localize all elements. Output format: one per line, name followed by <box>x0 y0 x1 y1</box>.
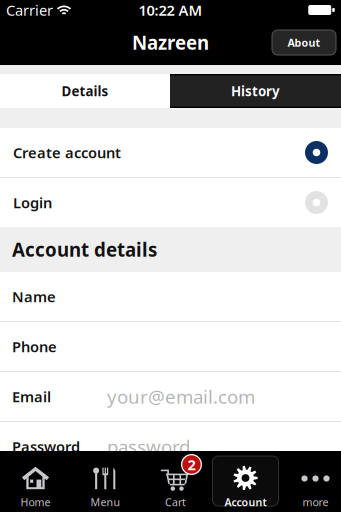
staticText: Account details <box>12 237 157 262</box>
staticText: About <box>287 35 320 50</box>
staticText: Carrier <box>6 0 53 20</box>
staticText: Home <box>20 495 50 509</box>
button[interactable]: Home <box>0 451 70 512</box>
staticText: Name <box>12 287 56 306</box>
staticText: more <box>302 495 328 509</box>
staticText: password <box>107 434 190 459</box>
staticText: Email <box>12 387 51 406</box>
staticText: Phone <box>12 337 57 356</box>
staticText: Nazreen <box>132 30 209 55</box>
staticText: Menu <box>90 495 120 509</box>
button[interactable]: Login <box>0 178 341 227</box>
button[interactable]: Details <box>0 74 170 108</box>
staticText: Login <box>13 193 52 212</box>
staticText: 10:22 AM <box>138 0 202 20</box>
staticText: Confirm <box>12 487 69 506</box>
button[interactable]: Account <box>210 451 280 512</box>
staticText: Account <box>224 495 266 509</box>
button[interactable]: more <box>280 451 341 512</box>
staticText: Password <box>12 437 80 456</box>
staticText: Cart <box>165 495 186 509</box>
button[interactable]: Create account <box>0 128 341 177</box>
button[interactable]: About <box>272 30 336 55</box>
staticText: Create account <box>13 143 121 162</box>
staticText: your@email.com <box>107 384 255 409</box>
button[interactable]: History <box>170 74 341 108</box>
button[interactable]: Menu <box>70 451 140 512</box>
button[interactable]: Cart <box>140 451 210 512</box>
staticText: History <box>231 82 280 100</box>
staticText: Details <box>61 82 108 100</box>
staticText: 2 <box>187 455 195 474</box>
